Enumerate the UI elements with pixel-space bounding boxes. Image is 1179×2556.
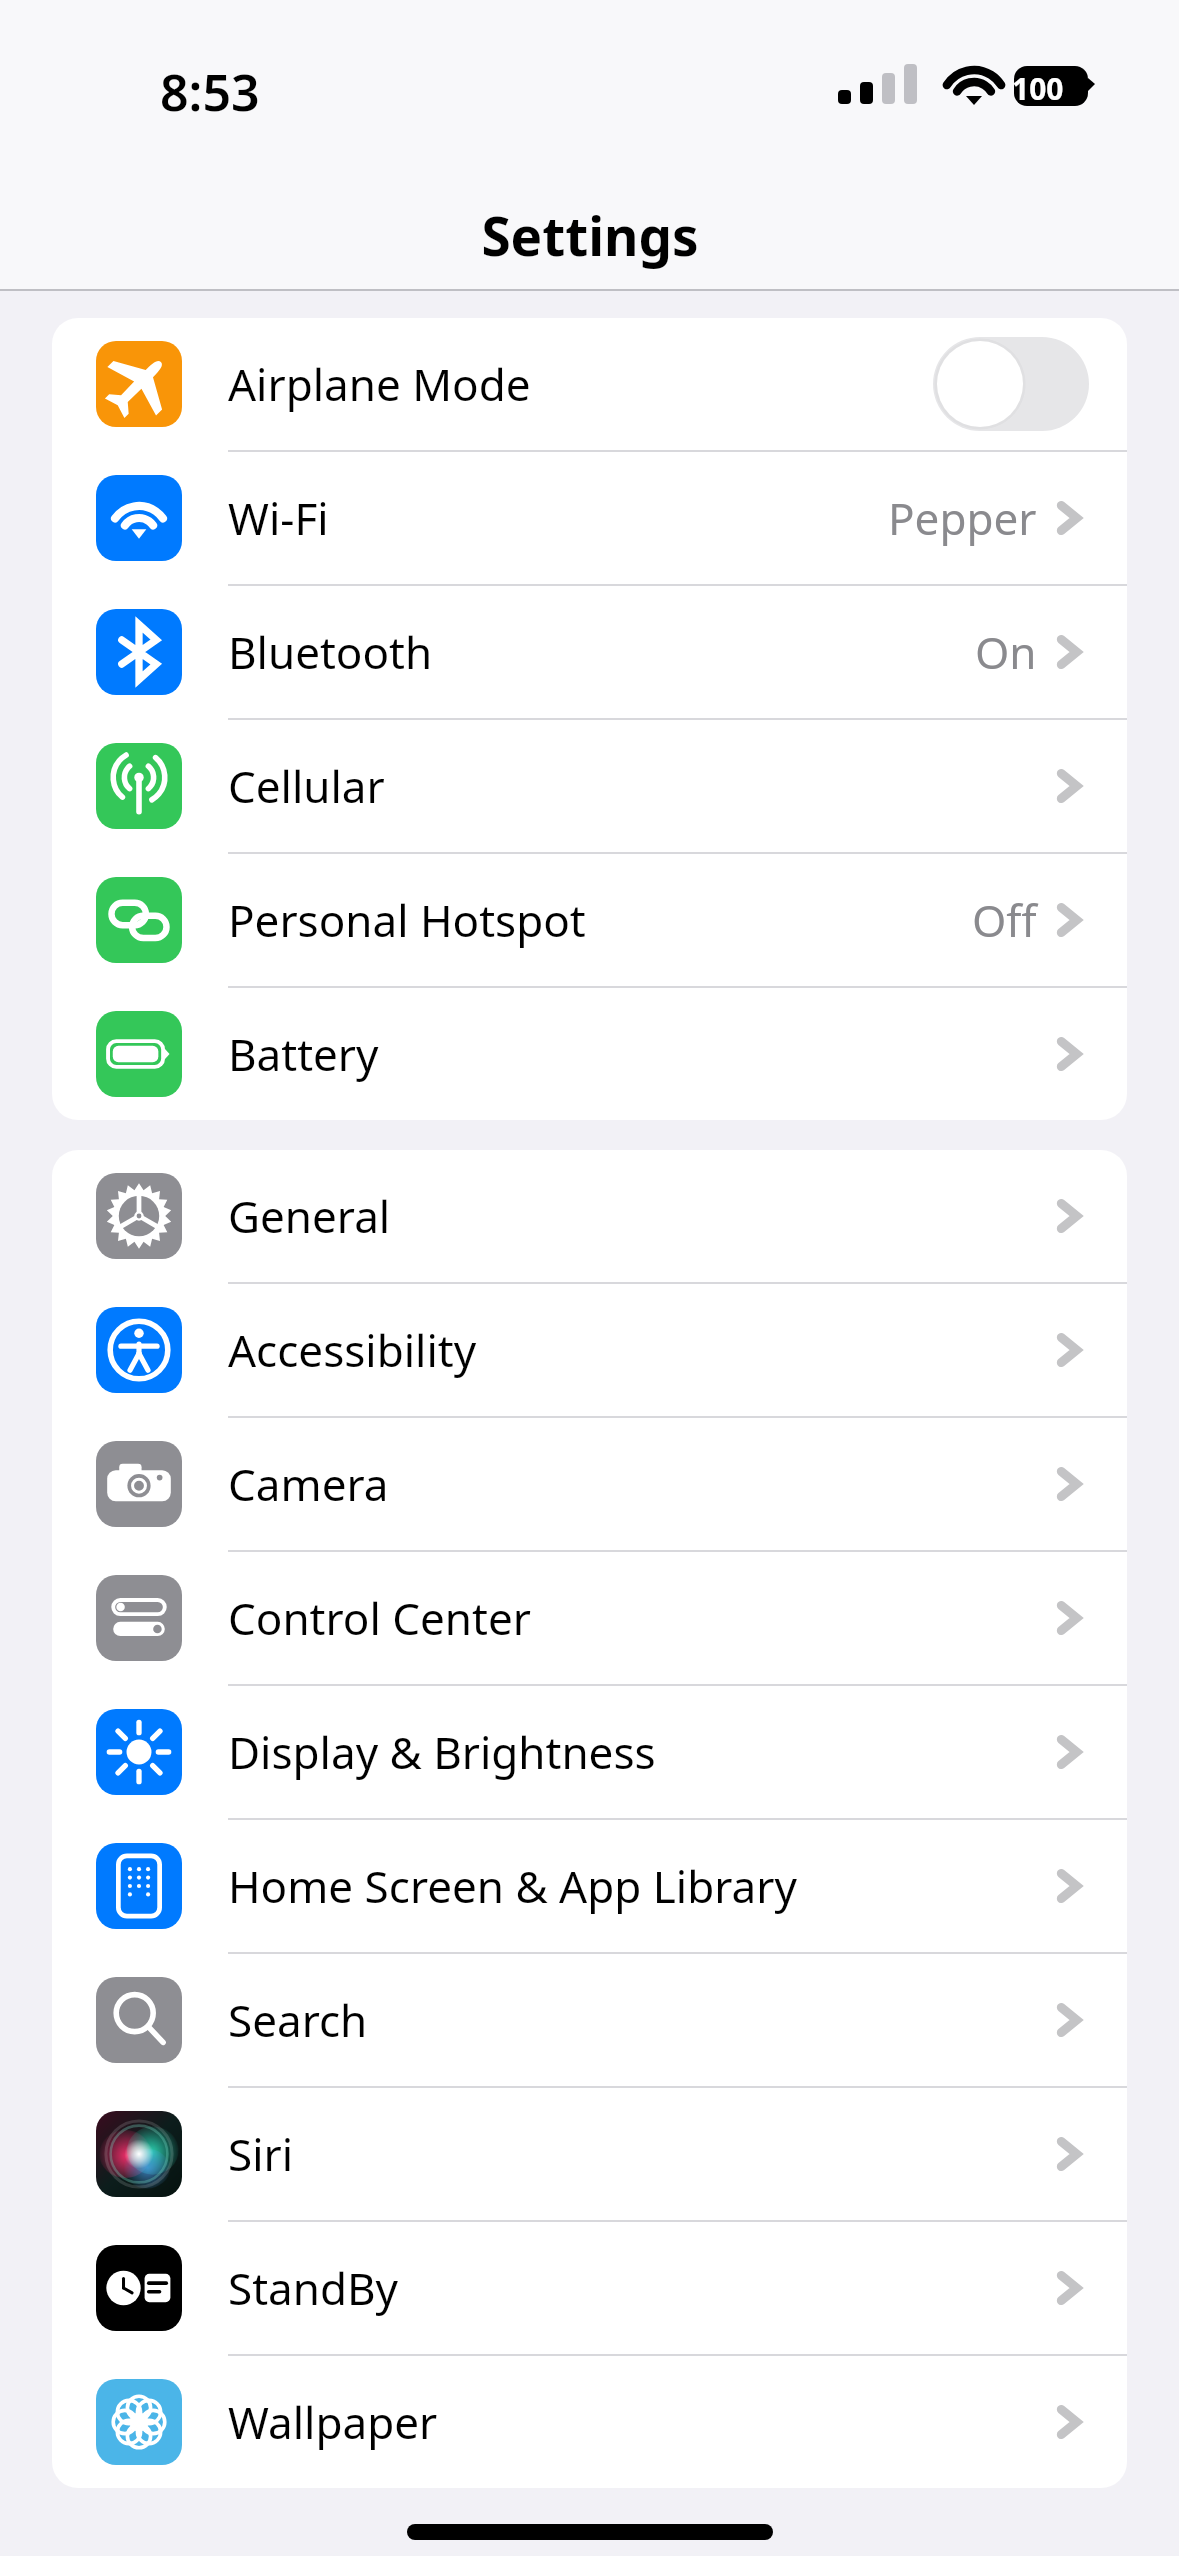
staticText: 8:53 bbox=[160, 58, 260, 126]
button[interactable]: Camera bbox=[52, 1418, 1127, 1550]
staticText: Camera bbox=[228, 1454, 389, 1514]
button[interactable]: General bbox=[52, 1150, 1127, 1282]
staticText: Personal Hotspot bbox=[228, 890, 586, 950]
staticText: Pepper bbox=[888, 488, 1037, 548]
button[interactable]: Siri bbox=[52, 2088, 1127, 2220]
staticText: 100 bbox=[1012, 68, 1064, 109]
staticText: Cellular bbox=[228, 756, 385, 816]
button[interactable]: Accessibility bbox=[52, 1284, 1127, 1416]
button[interactable]: Bluetooth bbox=[52, 586, 1127, 718]
button[interactable]: Personal Hotspot bbox=[52, 854, 1127, 986]
staticText: Control Center bbox=[228, 1588, 531, 1648]
staticText: Wallpaper bbox=[228, 2392, 438, 2452]
staticText: Settings bbox=[481, 199, 699, 271]
staticText: StandBy bbox=[228, 2258, 399, 2318]
staticText: Wi-Fi bbox=[228, 488, 329, 548]
button[interactable]: Battery bbox=[52, 988, 1127, 1120]
staticText: Off bbox=[972, 890, 1037, 950]
staticText: General bbox=[228, 1186, 391, 1246]
button[interactable]: Wallpaper bbox=[52, 2356, 1127, 2488]
staticText: Siri bbox=[228, 2124, 294, 2184]
button[interactable]: Airplane Mode bbox=[52, 318, 1127, 450]
staticText: Bluetooth bbox=[228, 622, 433, 682]
button[interactable]: Cellular bbox=[52, 720, 1127, 852]
button[interactable]: Display & Brightness bbox=[52, 1686, 1127, 1818]
staticText: Battery bbox=[228, 1024, 379, 1084]
staticText: Airplane Mode bbox=[228, 354, 531, 414]
staticText: Search bbox=[228, 1990, 368, 2050]
button[interactable]: Search bbox=[52, 1954, 1127, 2086]
button[interactable]: Wi-Fi bbox=[52, 452, 1127, 584]
button[interactable]: StandBy bbox=[52, 2222, 1127, 2354]
button[interactable]: Home Screen & App Library bbox=[52, 1820, 1127, 1952]
staticText: On bbox=[975, 622, 1037, 682]
staticText: Display & Brightness bbox=[228, 1722, 656, 1782]
staticText: Accessibility bbox=[228, 1320, 477, 1380]
button[interactable]: Control Center bbox=[52, 1552, 1127, 1684]
staticText: Home Screen & App Library bbox=[228, 1856, 797, 1916]
